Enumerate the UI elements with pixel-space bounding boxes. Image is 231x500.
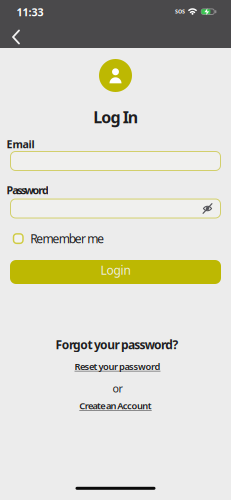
button[interactable]: Reset your password: [74, 360, 160, 372]
button[interactable]: [6, 27, 26, 47]
staticText: Login: [100, 262, 130, 278]
staticText: or: [112, 381, 122, 395]
staticText: 11:33: [16, 5, 43, 19]
staticText: Email: [6, 137, 34, 151]
staticText: Reset your password: [74, 360, 160, 372]
staticText: Forgot your password?: [55, 337, 178, 353]
button[interactable]: Create an Account: [79, 399, 152, 412]
button[interactable]: Login: [10, 260, 221, 284]
button[interactable]: [10, 198, 221, 218]
button[interactable]: Remember me: [13, 231, 104, 246]
staticText: Remember me: [30, 231, 104, 246]
button[interactable]: [199, 200, 215, 216]
staticText: Create an Account: [79, 399, 152, 412]
staticText: Log In: [93, 106, 138, 128]
staticText: Password: [6, 183, 49, 197]
staticText: SOS: [175, 8, 185, 15]
button[interactable]: [10, 151, 221, 171]
